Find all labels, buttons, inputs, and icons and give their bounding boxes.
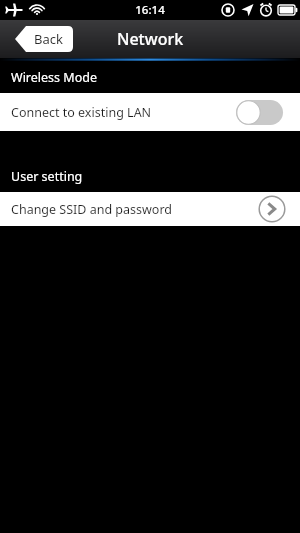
- staticText: 16:14: [135, 2, 165, 18]
- staticText: Change SSID and password: [11, 201, 258, 218]
- staticText: User setting: [11, 168, 83, 185]
- button[interactable]: Connect to existing LAN: [0, 93, 300, 131]
- button[interactable]: Back: [15, 26, 73, 52]
- button[interactable]: Change SSID and password: [0, 192, 300, 226]
- button[interactable]: Open change SSID and password: [258, 195, 286, 223]
- button[interactable]: Connect to existing LAN toggle: [236, 100, 283, 125]
- staticText: Back: [34, 30, 63, 48]
- staticText: Network: [117, 28, 184, 50]
- staticText: Wireless Mode: [11, 69, 97, 86]
- staticText: Connect to existing LAN: [11, 104, 236, 121]
